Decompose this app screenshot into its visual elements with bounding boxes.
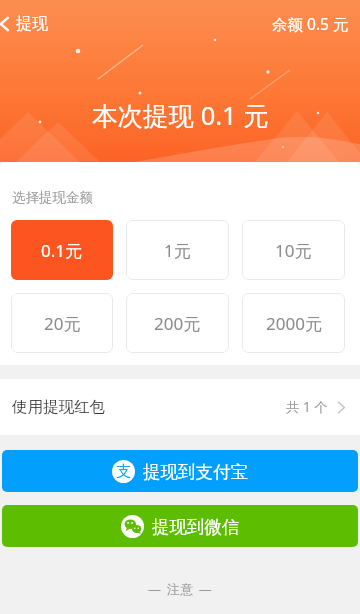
staticText: 提现到支付宝: [143, 461, 248, 483]
staticText: 共 1 个: [286, 398, 328, 416]
button[interactable]: Back: [0, 2, 48, 46]
staticText: 使用提现红包: [12, 397, 105, 417]
staticText: 10元: [275, 239, 312, 262]
staticText: 提现到微信: [152, 516, 240, 538]
button[interactable]: 1元: [126, 220, 229, 280]
button[interactable]: 提现到微信: [2, 505, 358, 547]
staticText: 200元: [154, 312, 201, 335]
button[interactable]: 0.1元: [11, 220, 113, 280]
staticText: 余额 0.5 元: [272, 13, 349, 34]
button[interactable]: 2000元: [242, 293, 345, 353]
button[interactable]: 10元: [242, 220, 345, 280]
staticText: 2000元: [266, 312, 322, 335]
staticText: 选择提现金额: [12, 189, 93, 206]
other: Back: [0, 13, 14, 35]
staticText: 20元: [44, 312, 81, 335]
staticText: 0.1元: [41, 239, 83, 262]
button[interactable]: 200元: [126, 293, 229, 353]
button[interactable]: 使用提现红包: [0, 379, 360, 435]
staticText: 1元: [164, 239, 191, 262]
staticText: 本次提现 0.1 元: [92, 98, 269, 133]
staticText: 支: [116, 462, 131, 481]
staticText: — 注意 —: [148, 580, 213, 598]
staticText: 提现: [16, 14, 48, 34]
button[interactable]: 20元: [11, 293, 113, 353]
button[interactable]: 支: [2, 450, 358, 492]
